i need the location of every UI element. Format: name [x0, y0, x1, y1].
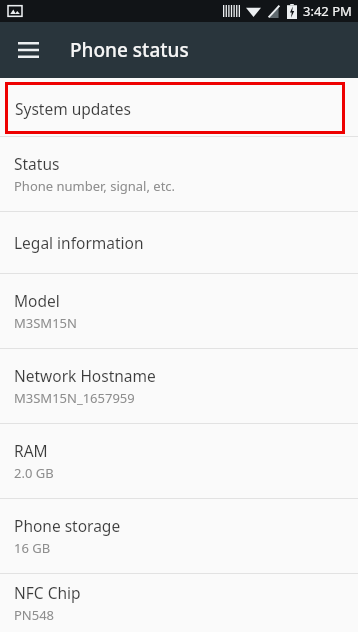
- staticText: 16 GB: [14, 539, 51, 557]
- staticText: PN548: [14, 606, 55, 624]
- staticText: Legal information: [14, 232, 144, 253]
- staticText: Model: [14, 290, 60, 311]
- staticText: 2.0 GB: [14, 464, 54, 482]
- staticText: M3SM15N_1657959: [14, 389, 135, 407]
- staticText: Phone number, signal, etc.: [14, 177, 176, 195]
- button[interactable]: Model: [0, 274, 358, 348]
- staticText: NFC Chip: [14, 582, 81, 603]
- staticText: Phone status: [70, 37, 189, 63]
- button[interactable]: Open navigation menu: [8, 30, 48, 70]
- staticText: 3:42 PM: [303, 2, 352, 20]
- button[interactable]: NFC Chip: [0, 574, 358, 632]
- button[interactable]: Phone storage: [0, 499, 358, 573]
- button[interactable]: Legal information: [0, 212, 358, 273]
- button[interactable]: System updates: [5, 82, 345, 134]
- staticText: Status: [14, 153, 60, 174]
- button[interactable]: Status: [0, 137, 358, 211]
- staticText: Network Hostname: [14, 365, 156, 386]
- button[interactable]: Network Hostname: [0, 349, 358, 423]
- button[interactable]: RAM: [0, 424, 358, 498]
- staticText: Phone storage: [14, 515, 121, 536]
- staticText: M3SM15N: [14, 314, 77, 332]
- staticText: RAM: [14, 440, 48, 461]
- staticText: System updates: [15, 98, 131, 119]
